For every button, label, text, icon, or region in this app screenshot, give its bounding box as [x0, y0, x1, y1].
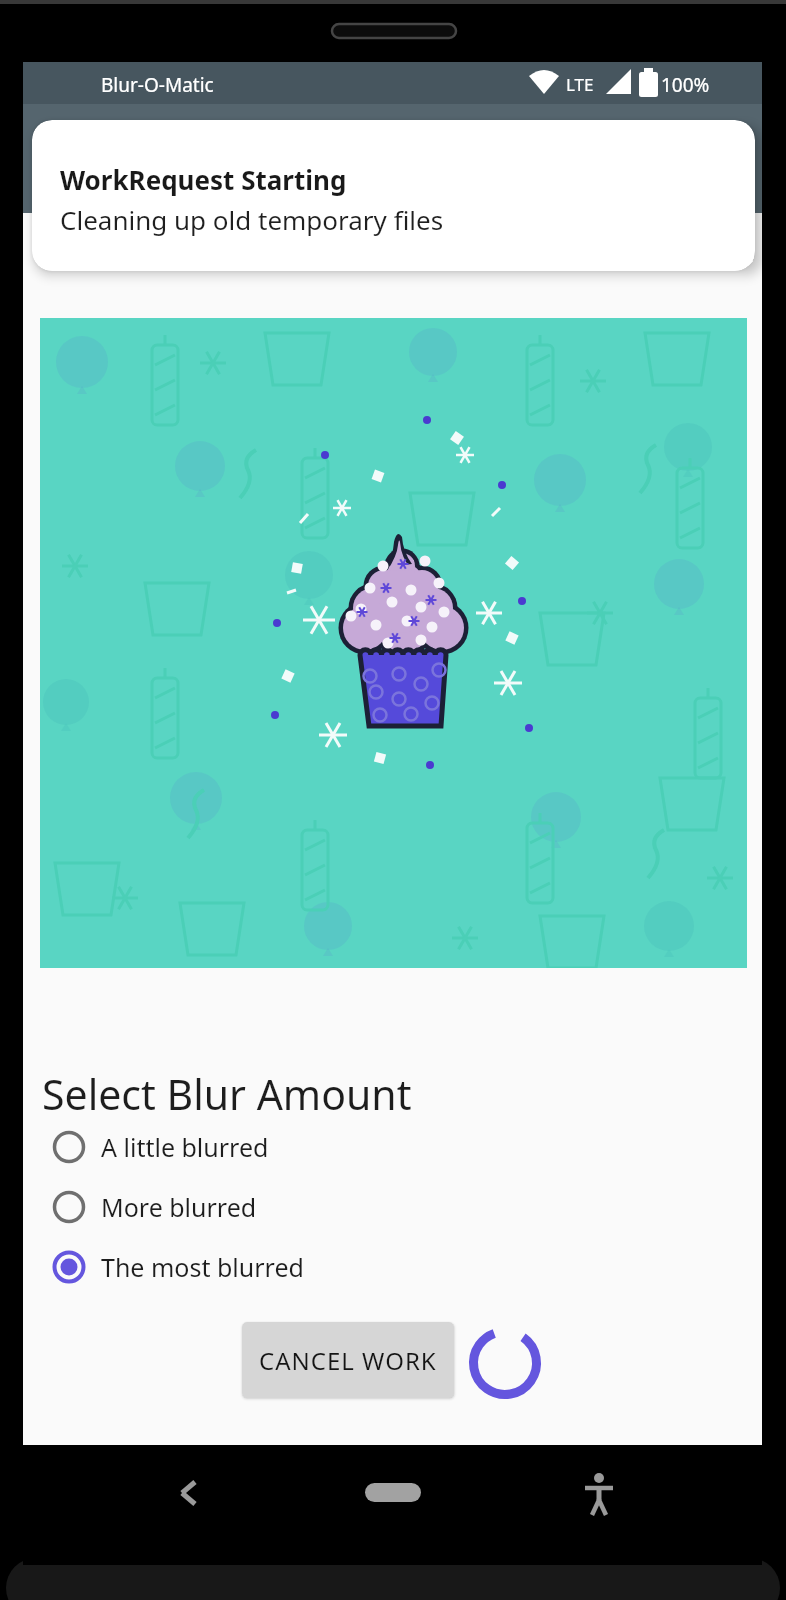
- button[interactable]: WorkRequest Starting: [32, 120, 755, 271]
- button[interactable]: [23, 1445, 762, 1565]
- staticText: 100%: [661, 72, 710, 98]
- staticText: A little blurred: [101, 1130, 269, 1164]
- staticText: The most blurred: [101, 1250, 304, 1284]
- staticText: LTE: [566, 73, 594, 96]
- staticText: WorkRequest Starting: [60, 162, 347, 197]
- button[interactable]: The most blurred: [47, 1239, 304, 1295]
- staticText: Blur-O-Matic: [101, 72, 214, 98]
- staticText: Select Blur Amount: [42, 1066, 412, 1122]
- staticText: More blurred: [101, 1190, 257, 1224]
- button[interactable]: A little blurred: [47, 1119, 269, 1175]
- button[interactable]: More blurred: [47, 1179, 257, 1235]
- staticText: Cleaning up old temporary files: [60, 202, 444, 237]
- staticText: CANCEL WORK: [259, 1344, 437, 1377]
- button[interactable]: CANCEL WORK: [242, 1322, 454, 1398]
